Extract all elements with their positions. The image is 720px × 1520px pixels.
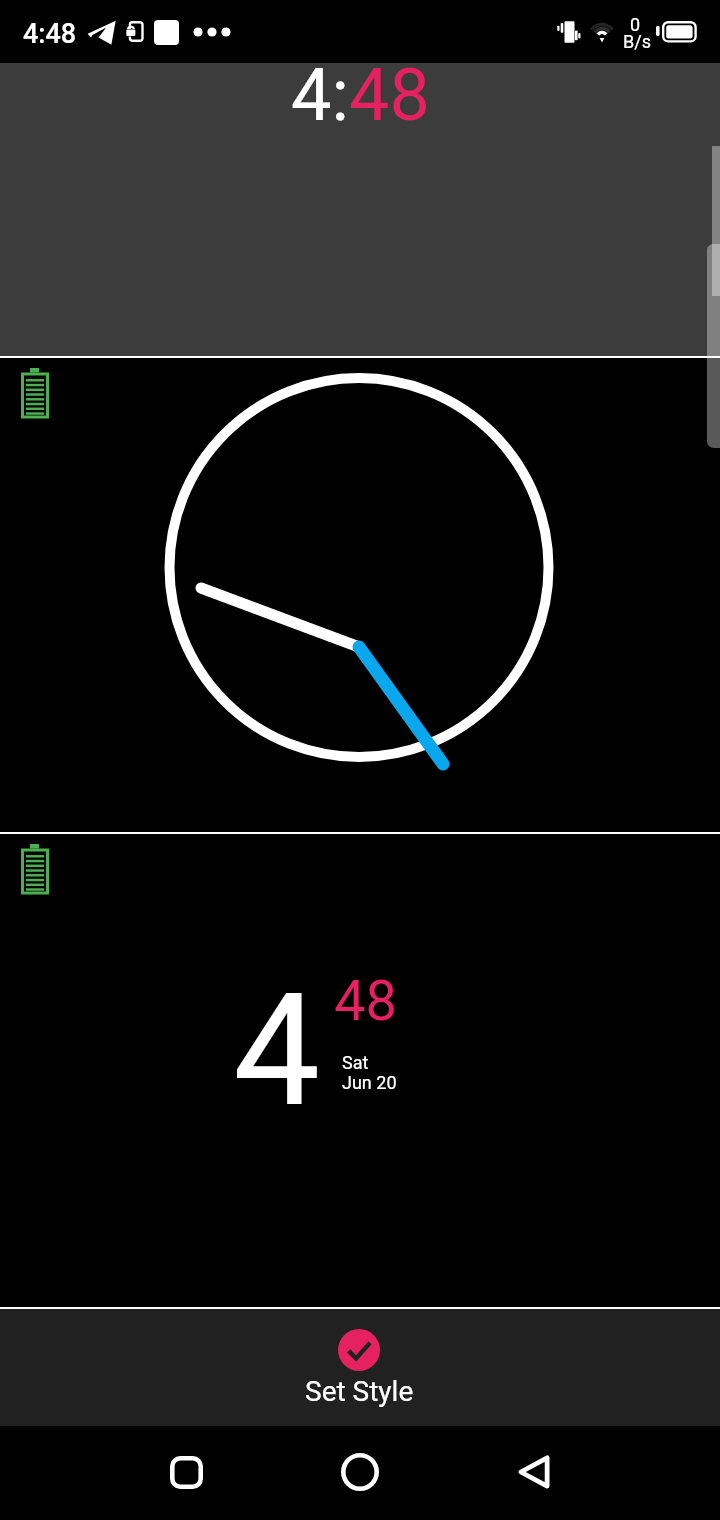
- button[interactable]: Back: [498, 1441, 570, 1503]
- button[interactable]: Set Style: [0, 1309, 720, 1426]
- button[interactable]: Recent apps: [150, 1441, 222, 1503]
- button[interactable]: [0, 358, 720, 832]
- staticText: Set Style: [305, 1375, 414, 1408]
- staticText: 48: [334, 968, 397, 1034]
- staticText: 4:: [291, 53, 349, 137]
- staticText: 4: [233, 960, 321, 1142]
- staticText: 4:48: [23, 18, 77, 50]
- button[interactable]: 4: [0, 834, 720, 1307]
- staticText: 0: [630, 14, 641, 35]
- staticText: 48: [349, 53, 430, 137]
- button[interactable]: 4:: [0, 63, 720, 356]
- button[interactable]: Home: [324, 1441, 396, 1503]
- staticText: Sat Jun 20: [342, 1052, 397, 1093]
- staticText: B/s: [623, 31, 651, 52]
